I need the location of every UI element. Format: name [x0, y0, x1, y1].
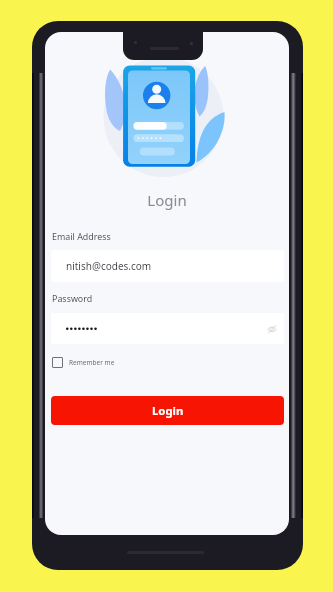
staticText: Login: [152, 403, 184, 418]
staticText: Remember me: [69, 358, 115, 367]
button[interactable]: Show password: [265, 322, 279, 336]
button[interactable]: Login: [51, 396, 284, 425]
staticText: nitish@codes.com: [66, 259, 152, 273]
button[interactable]: Remember me: [52, 357, 115, 368]
button[interactable]: Show password: [51, 313, 284, 344]
staticText: Login: [45, 190, 289, 210]
button[interactable]: nitish@codes.com: [51, 250, 284, 282]
staticText: Email Address: [52, 230, 111, 242]
staticText: Password: [52, 292, 93, 304]
